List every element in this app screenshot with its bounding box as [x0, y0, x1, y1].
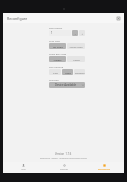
staticText: －: [74, 32, 77, 35]
staticText: By Code: [53, 45, 63, 48]
staticText: Never: [73, 58, 80, 61]
staticText: Relevance · device · extended processing…: [40, 157, 88, 160]
button[interactable]: Fast: [49, 69, 61, 75]
staticText: Filter Depth: [49, 26, 63, 29]
button[interactable]: Never: [67, 56, 85, 62]
staticText: Always: [53, 58, 62, 61]
staticText: ＋: [81, 32, 84, 35]
button[interactable]: Random: [74, 69, 85, 75]
button[interactable]: Always: [49, 56, 66, 62]
button[interactable]: 1: [49, 30, 71, 36]
staticText: Scan: [21, 168, 26, 171]
button[interactable]: Reconfigure: [84, 162, 124, 173]
button[interactable]: Value Code: [67, 43, 85, 49]
button[interactable]: Increase: [79, 30, 85, 36]
button[interactable]: Menu: [116, 16, 121, 21]
button[interactable]: By Code: [49, 43, 66, 49]
staticText: Device Available: [49, 83, 82, 87]
staticText: Key Warning: [49, 65, 64, 68]
staticText: Fast: [53, 71, 58, 74]
staticText: Random: [75, 71, 85, 74]
staticText: Version 1.7.6: [55, 152, 72, 156]
staticText: Value Code: [69, 45, 83, 48]
staticText: 1: [51, 31, 53, 35]
button[interactable]: Scan: [3, 162, 44, 173]
button[interactable]: Device Available: [49, 82, 85, 88]
staticText: Scan type: [49, 39, 60, 42]
staticText: Selected: [49, 78, 59, 81]
staticText: Reconfigure: [98, 168, 110, 171]
button[interactable]: Light: [62, 69, 73, 75]
button[interactable]: Decrease: [72, 30, 78, 36]
staticText: Show BID Code: [49, 52, 67, 55]
staticText: Reconfigure: [7, 16, 28, 21]
button[interactable]: Settings: [44, 162, 84, 173]
staticText: Settings: [60, 168, 68, 171]
staticText: Light: [65, 71, 71, 74]
